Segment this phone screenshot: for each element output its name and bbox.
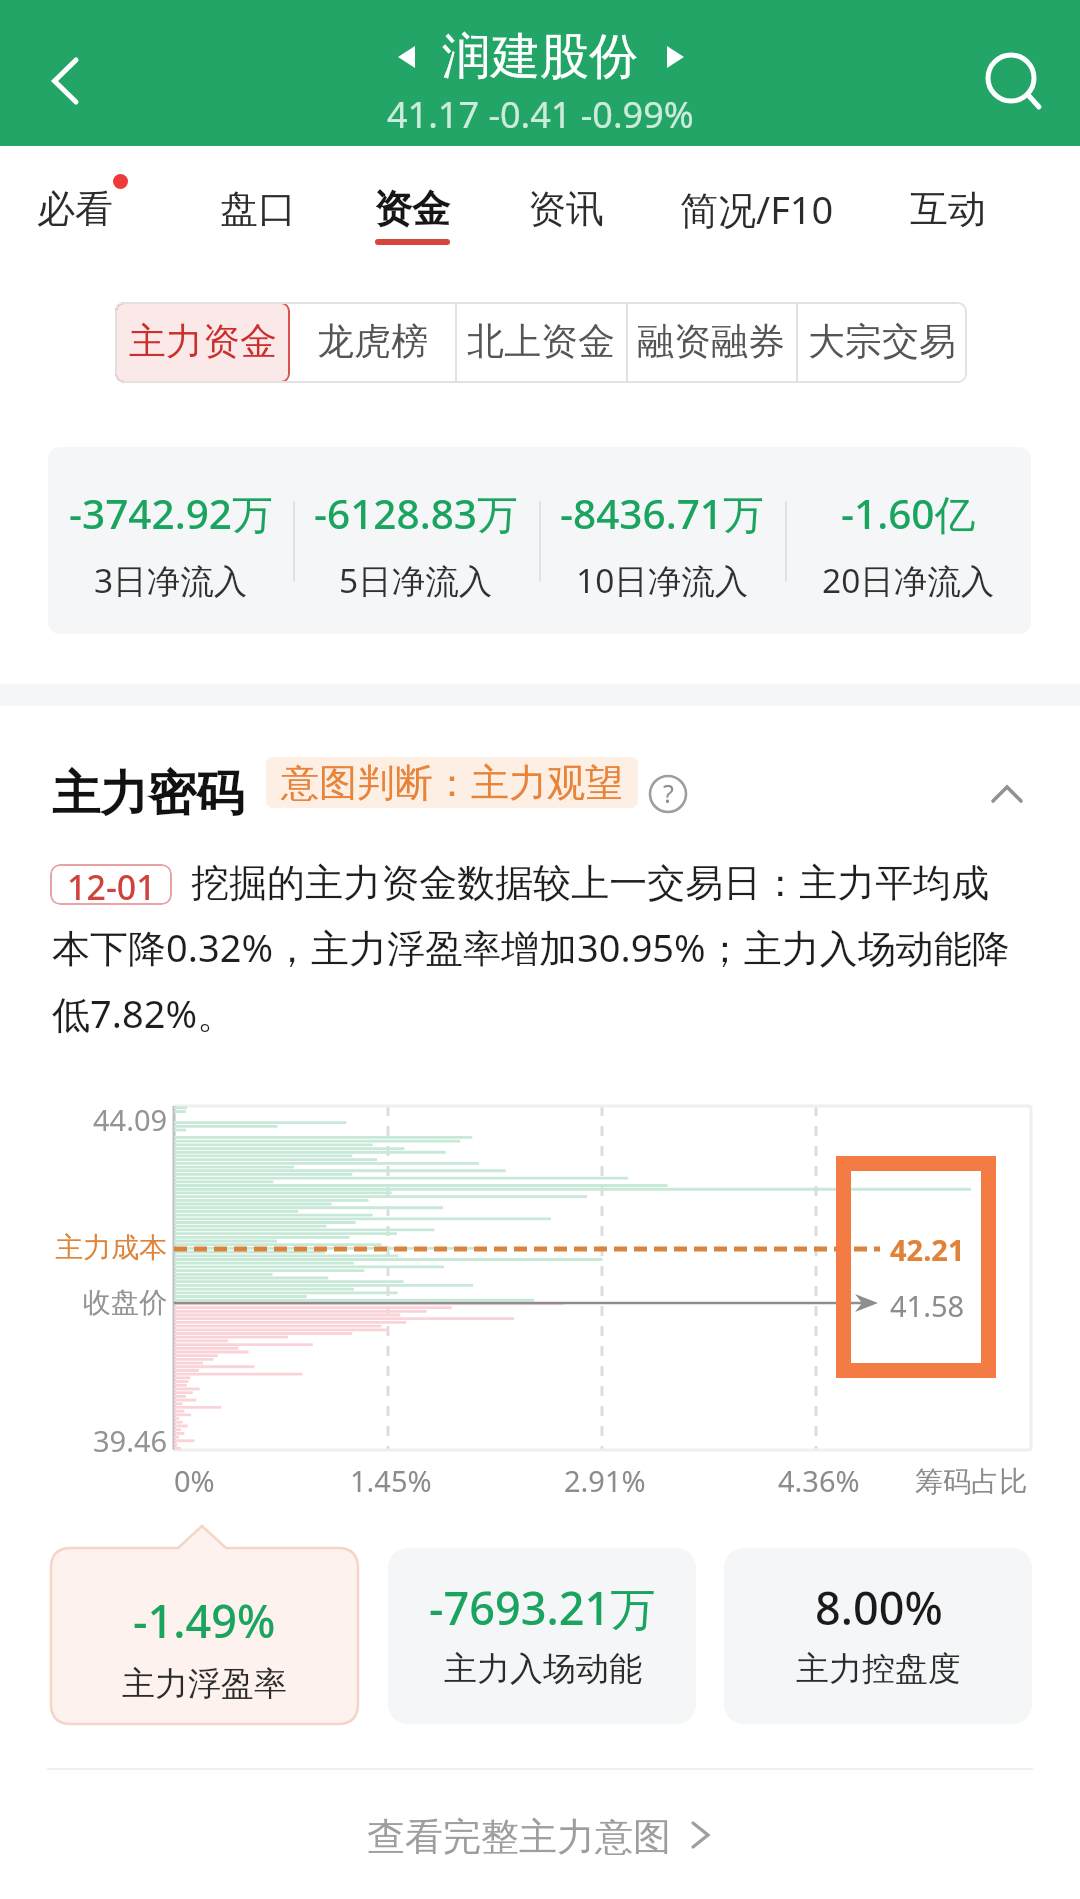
- staticText: 互动: [910, 185, 986, 233]
- button[interactable]: -7693.21万: [388, 1548, 696, 1724]
- staticText: 主力控盘度: [796, 1648, 961, 1690]
- staticText: 龙虎榜: [317, 318, 428, 365]
- staticText: -8436.71万: [560, 486, 764, 541]
- staticText: 8.00%: [815, 1577, 943, 1638]
- button[interactable]: Collapse: [976, 763, 1038, 825]
- staticText: -3742.92万: [69, 486, 273, 541]
- staticText: 41.58: [890, 1286, 965, 1325]
- button[interactable]: Search: [950, 0, 1080, 146]
- staticText: 收盘价: [83, 1285, 167, 1320]
- staticText: 挖掘的主力资金数据较上一交易日：主力平均成本下降0.32%，主力浮盈率增加30.…: [52, 855, 1014, 1040]
- button[interactable]: 主力资金: [115, 302, 290, 383]
- staticText: 润建股份: [442, 26, 638, 88]
- staticText: 融资融券: [637, 318, 785, 365]
- staticText: 必看: [37, 185, 113, 233]
- staticText: 主力浮盈率: [122, 1663, 287, 1705]
- staticText: 查看完整主力意图: [367, 1813, 671, 1861]
- button[interactable]: 8.00%: [724, 1548, 1032, 1724]
- staticText: 3日净流入: [94, 557, 248, 603]
- staticText: 北上资金: [467, 318, 615, 365]
- button[interactable]: 融资融券: [626, 302, 796, 383]
- staticText: 主力资金: [129, 318, 277, 365]
- staticText: 意图判断：主力观望: [281, 759, 623, 807]
- button[interactable]: 龙虎榜: [290, 302, 455, 383]
- staticText: 资讯: [528, 185, 604, 233]
- button[interactable]: 简况/F10: [667, 146, 847, 261]
- staticText: 主力成本: [55, 1230, 167, 1265]
- button[interactable]: 盘口: [212, 146, 304, 261]
- button[interactable]: 大宗交易: [796, 302, 967, 383]
- staticText: 4.36%: [778, 1461, 860, 1500]
- staticText: 主力密码: [52, 764, 244, 824]
- button[interactable]: -1.49%: [51, 1526, 358, 1724]
- staticText: 简况/F10: [680, 183, 834, 235]
- staticText: -1.60亿: [841, 486, 976, 541]
- staticText: 12-01: [67, 864, 156, 905]
- staticText: 5日净流入: [339, 557, 493, 603]
- button[interactable]: 必看: [29, 146, 121, 261]
- staticText: 10日净流入: [576, 557, 749, 603]
- button[interactable]: 查看完整主力意图: [0, 1770, 1080, 1899]
- staticText: -7693.21万: [429, 1577, 656, 1638]
- staticText: ?: [663, 776, 674, 810]
- button[interactable]: 互动: [902, 146, 994, 261]
- button[interactable]: Back: [10, 0, 120, 146]
- staticText: 39.46: [93, 1421, 168, 1460]
- staticText: 20日净流入: [822, 557, 995, 603]
- staticText: 42.21: [890, 1230, 965, 1269]
- staticText: 2.91%: [564, 1461, 646, 1500]
- staticText: 44.09: [93, 1100, 168, 1139]
- staticText: 资金: [374, 185, 450, 233]
- staticText: 盘口: [220, 185, 296, 233]
- staticText: 0%: [174, 1461, 215, 1500]
- staticText: 主力入场动能: [444, 1648, 642, 1690]
- staticText: -1.49%: [133, 1590, 276, 1651]
- staticText: 1.45%: [350, 1461, 432, 1500]
- button[interactable]: 资金: [366, 146, 458, 261]
- button[interactable]: 资讯: [520, 146, 612, 261]
- button[interactable]: Help: [644, 770, 692, 818]
- staticText: 筹码占比: [915, 1464, 1027, 1499]
- staticText: 41.17 -0.41 -0.99%: [387, 90, 694, 139]
- staticText: -6128.83万: [314, 486, 518, 541]
- button[interactable]: 北上资金: [455, 302, 626, 383]
- staticText: 大宗交易: [808, 318, 956, 365]
